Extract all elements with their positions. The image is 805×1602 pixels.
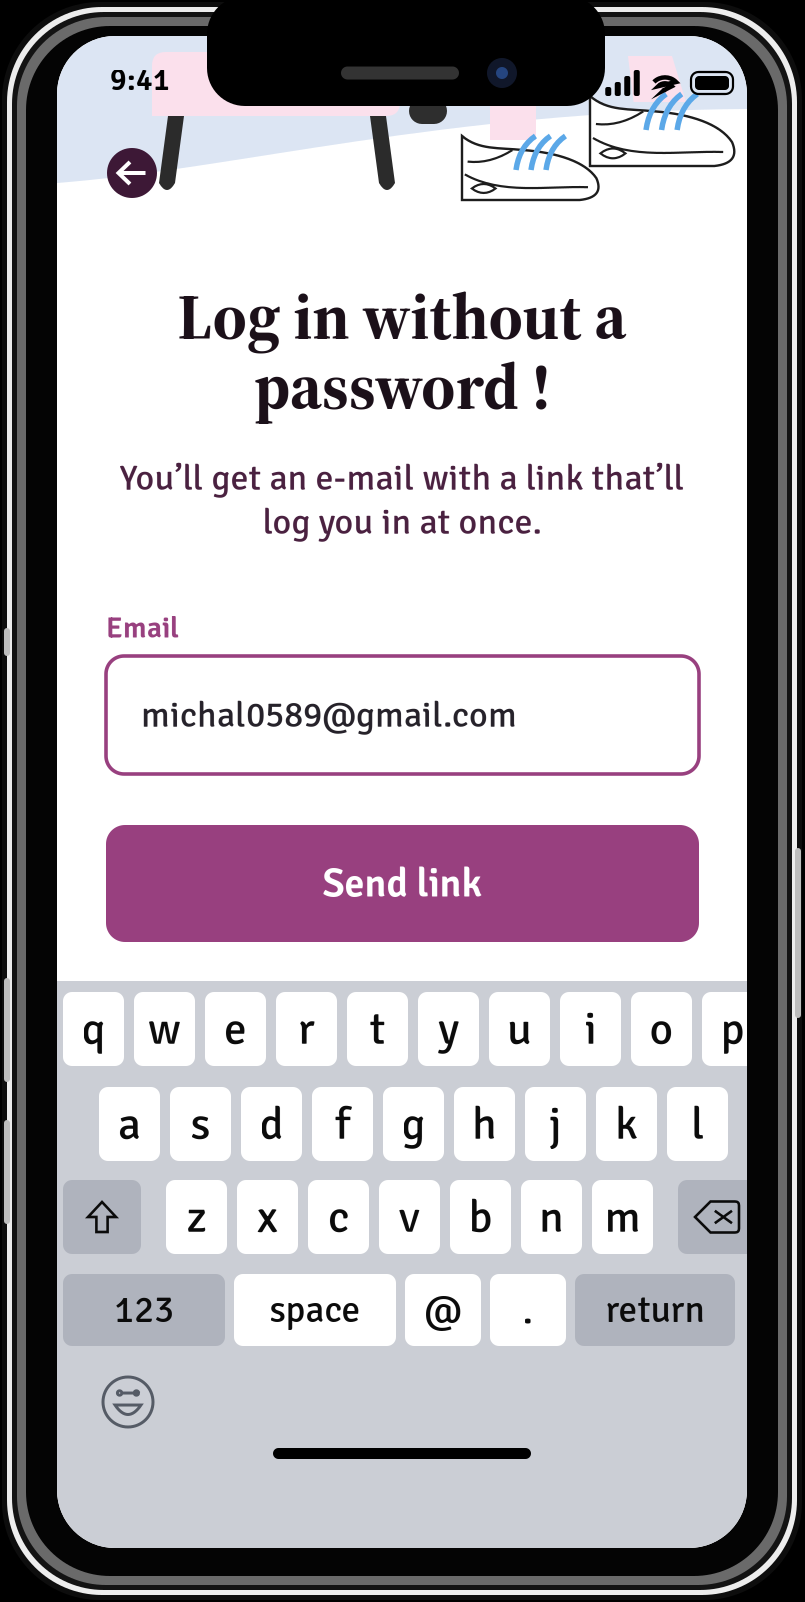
staticText: n <box>539 1189 564 1245</box>
button[interactable]: u <box>489 992 550 1066</box>
button[interactable]: b <box>450 1180 511 1254</box>
staticText: d <box>259 1096 283 1152</box>
button[interactable]: n <box>521 1180 582 1254</box>
button[interactable]: v <box>379 1180 440 1254</box>
staticText: k <box>615 1096 638 1152</box>
staticText: w <box>148 1001 181 1057</box>
staticText: space <box>269 1287 360 1333</box>
button[interactable]: o <box>631 992 692 1066</box>
button[interactable]: . <box>490 1274 566 1346</box>
button[interactable]: space <box>234 1274 396 1346</box>
button[interactable]: 123 <box>63 1274 225 1346</box>
button[interactable]: z <box>166 1180 227 1254</box>
staticText: . <box>522 1285 533 1335</box>
staticText: Log in without a <box>177 272 626 360</box>
staticText: Email <box>106 610 179 646</box>
button[interactable]: @ <box>405 1274 481 1346</box>
staticText: e <box>224 1001 247 1057</box>
button[interactable]: i <box>560 992 621 1066</box>
button[interactable]: Email address <box>106 656 699 774</box>
staticText: j <box>549 1096 562 1152</box>
button[interactable]: y <box>418 992 479 1066</box>
button[interactable]: Emoji keyboard <box>101 1375 155 1429</box>
button[interactable]: r <box>276 992 337 1066</box>
button[interactable]: t <box>347 992 408 1066</box>
button[interactable]: l <box>667 1087 728 1161</box>
staticText: t <box>369 1001 385 1057</box>
button[interactable]: c <box>308 1180 369 1254</box>
staticText: @ <box>424 1285 462 1335</box>
button[interactable]: q <box>63 992 124 1066</box>
staticText: q <box>81 1001 105 1057</box>
staticText: x <box>257 1189 278 1245</box>
staticText: b <box>468 1189 492 1245</box>
button[interactable]: a <box>99 1087 160 1161</box>
staticText: i <box>584 1001 596 1057</box>
staticText: f <box>335 1096 350 1152</box>
button[interactable]: g <box>383 1087 444 1161</box>
button[interactable]: w <box>134 992 195 1066</box>
staticText: p <box>720 1001 744 1057</box>
staticText: You’ll get an e-mail with a link that’ll <box>119 456 684 500</box>
button[interactable]: d <box>241 1087 302 1161</box>
staticText: r <box>298 1001 315 1057</box>
staticText: 123 <box>114 1287 174 1333</box>
staticText: c <box>328 1189 349 1245</box>
staticText: log you in at once. <box>262 500 541 544</box>
button[interactable]: Send link <box>106 825 699 942</box>
staticText: Send link <box>322 859 482 908</box>
button[interactable]: k <box>596 1087 657 1161</box>
staticText: z <box>186 1189 206 1245</box>
staticText: v <box>399 1189 420 1245</box>
button[interactable]: p <box>702 992 763 1066</box>
staticText: o <box>649 1001 673 1057</box>
button[interactable]: f <box>312 1087 373 1161</box>
staticText: u <box>507 1001 532 1057</box>
staticText: y <box>438 1001 459 1057</box>
staticText: m <box>604 1189 640 1245</box>
button[interactable]: x <box>237 1180 298 1254</box>
staticText: s <box>190 1096 210 1152</box>
button[interactable]: h <box>454 1087 515 1161</box>
button[interactable]: s <box>170 1087 231 1161</box>
button[interactable]: Delete <box>678 1180 756 1254</box>
button[interactable]: return <box>575 1274 735 1346</box>
staticText: return <box>605 1287 704 1333</box>
staticText: h <box>472 1096 497 1152</box>
staticText: password ! <box>254 342 550 430</box>
button[interactable]: e <box>205 992 266 1066</box>
staticText: g <box>401 1096 425 1152</box>
staticText: l <box>691 1096 704 1152</box>
staticText: a <box>118 1096 141 1152</box>
button[interactable]: j <box>525 1087 586 1161</box>
button[interactable]: m <box>592 1180 653 1254</box>
staticText: michal0589@gmail.com <box>141 693 517 737</box>
button[interactable]: Back <box>107 148 157 198</box>
staticText: 9:41 <box>110 61 170 99</box>
button[interactable]: Shift <box>63 1180 141 1254</box>
